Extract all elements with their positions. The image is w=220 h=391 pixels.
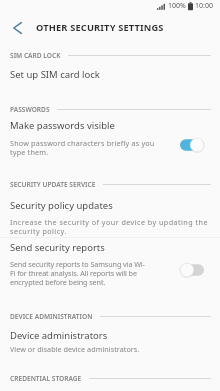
staticText: Increase the security of your device by … [10, 217, 208, 237]
staticText: Make passwords visible [10, 119, 115, 132]
staticText: Set up SIM card lock [10, 68, 100, 81]
staticText: SECURITY UPDATE SERVICE [10, 180, 96, 189]
staticText: Send security reports [10, 241, 105, 254]
staticText: 10:00 [195, 1, 213, 11]
button[interactable] [0, 237, 220, 291]
staticText: PASSWORDS [10, 105, 50, 114]
button[interactable] [0, 64, 220, 91]
staticText: DEVICE ADMINISTRATION [10, 312, 93, 321]
staticText: SIM CARD LOCK [10, 51, 61, 60]
button[interactable] [0, 195, 220, 236]
staticText: OTHER SECURITY SETTINGS [36, 21, 164, 34]
staticText: Device administrators [10, 329, 108, 342]
button[interactable] [6, 17, 28, 38]
staticText: Send security reports to Samsung via Wi-… [10, 259, 145, 288]
button[interactable] [0, 114, 220, 162]
staticText: Show password characters briefly as you … [10, 138, 155, 158]
staticText: 100% [168, 1, 186, 11]
button[interactable] [0, 324, 220, 359]
staticText: View or disable device administrators. [10, 344, 140, 354]
staticText: CREDENTIAL STORAGE [10, 374, 82, 383]
staticText: Security policy updates [10, 199, 113, 212]
